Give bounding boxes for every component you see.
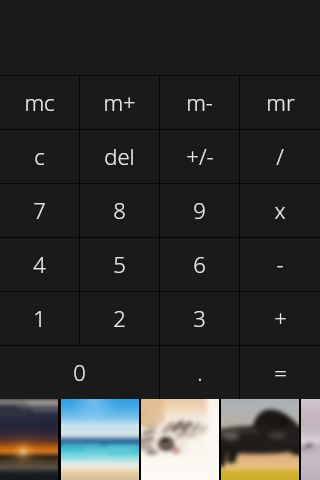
button[interactable]: del [80, 130, 159, 183]
button[interactable]: +/- [160, 130, 239, 183]
staticText: 4 [33, 249, 46, 279]
button[interactable]: Sunset photo [0, 399, 58, 480]
button[interactable]: Running horse photo [221, 399, 299, 480]
staticText: mr [266, 87, 295, 117]
button[interactable]: 6 [160, 238, 239, 291]
staticText: m+ [103, 87, 136, 117]
staticText: - [276, 249, 284, 279]
button[interactable]: / [240, 130, 320, 183]
staticText: del [104, 141, 135, 171]
staticText: / [276, 141, 284, 171]
staticText: + [274, 303, 287, 333]
staticText: 3 [193, 303, 206, 333]
button[interactable]: m+ [80, 76, 159, 129]
staticText: 8 [113, 195, 126, 225]
button[interactable]: Sleeping cat photo [141, 399, 219, 480]
button[interactable]: . [160, 346, 239, 399]
staticText: 0 [73, 357, 86, 387]
staticText: = [274, 357, 287, 387]
button[interactable]: 7 [0, 184, 79, 237]
button[interactable]: 9 [160, 184, 239, 237]
staticText: c [34, 141, 45, 171]
button[interactable]: Beach photo [61, 399, 139, 480]
staticText: . [197, 357, 203, 387]
button[interactable]: 1 [0, 292, 79, 345]
button[interactable]: mr [240, 76, 320, 129]
button[interactable]: c [0, 130, 79, 183]
button[interactable]: + [240, 292, 320, 345]
button[interactable]: 2 [80, 292, 159, 345]
staticText: +/- [186, 141, 214, 171]
button[interactable]: 8 [80, 184, 159, 237]
button[interactable]: 4 [0, 238, 79, 291]
button[interactable]: m- [160, 76, 239, 129]
button[interactable]: mc [0, 76, 79, 129]
button[interactable]: 5 [80, 238, 159, 291]
button[interactable]: x [240, 184, 320, 237]
staticText: 9 [193, 195, 206, 225]
button[interactable]: Dragonfly photo [301, 399, 320, 480]
staticText: 1 [33, 303, 46, 333]
staticText: 2 [113, 303, 126, 333]
staticText: 7 [33, 195, 46, 225]
staticText: m- [186, 87, 213, 117]
button[interactable]: - [240, 238, 320, 291]
staticText: 5 [113, 249, 126, 279]
button[interactable]: 3 [160, 292, 239, 345]
button[interactable]: 0 [0, 346, 159, 399]
staticText: x [274, 195, 286, 225]
staticText: mc [24, 87, 55, 117]
staticText: 6 [193, 249, 206, 279]
button[interactable]: = [240, 346, 320, 399]
